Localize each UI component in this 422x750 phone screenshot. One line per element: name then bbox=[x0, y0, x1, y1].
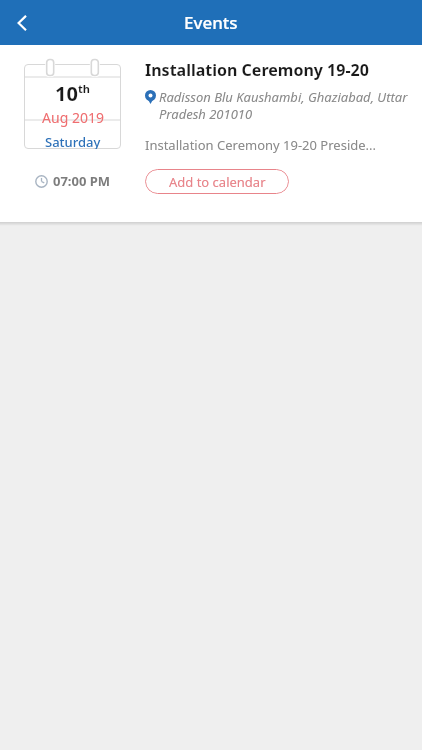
staticText: 10 bbox=[55, 80, 78, 107]
button[interactable]: Add to calendar bbox=[145, 169, 289, 194]
button[interactable]: Back bbox=[0, 1, 44, 45]
staticText: Radisson Blu Kaushambi, Ghaziabad, Uttar… bbox=[159, 88, 414, 123]
staticText: Aug 2019 bbox=[42, 108, 104, 127]
staticText: Add to calendar bbox=[169, 173, 266, 191]
staticText: th bbox=[78, 81, 90, 96]
staticText: Installation Ceremony 19-20 bbox=[145, 59, 369, 81]
staticText: 07:00 PM bbox=[53, 172, 111, 190]
staticText: Saturday bbox=[45, 133, 101, 149]
staticText: Events bbox=[184, 11, 238, 34]
staticText: Installation Ceremony 19-20 Preside... bbox=[145, 136, 377, 154]
button[interactable]: 10 bbox=[0, 45, 422, 222]
